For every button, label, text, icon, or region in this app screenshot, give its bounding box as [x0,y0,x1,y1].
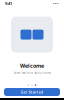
button[interactable]: Get Started [4,88,60,96]
staticText: 9:41 [5,1,12,6]
staticText: ••• [53,1,59,6]
staticText: Some text here about terms [13,71,50,75]
staticText: Welcome [20,62,44,69]
staticText: Get Started [20,89,43,95]
